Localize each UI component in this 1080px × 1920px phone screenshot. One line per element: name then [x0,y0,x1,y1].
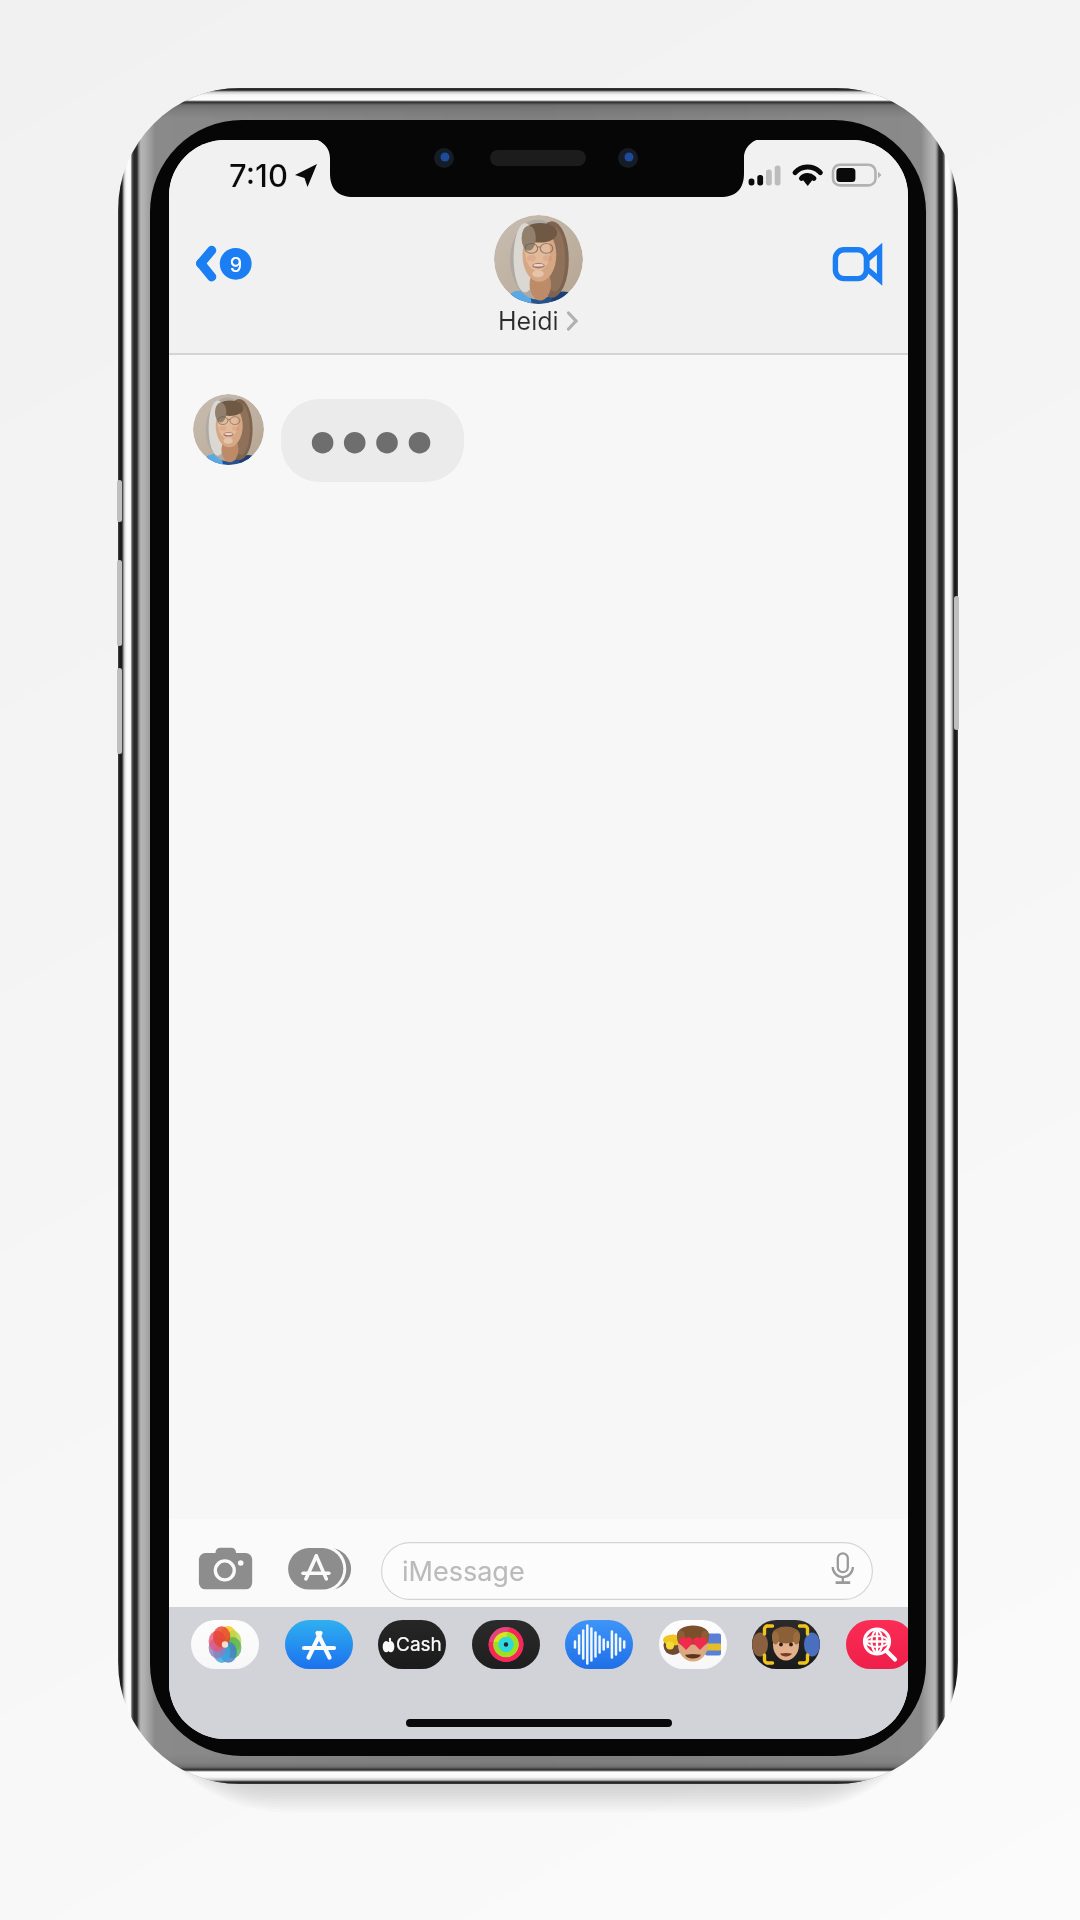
staticText: iMessage [402,1555,525,1588]
button[interactable]: appstore [285,1620,353,1669]
button[interactable]: voice [565,1620,633,1669]
button[interactable]: iMessage [381,1542,873,1600]
button[interactable]: Camera [195,1545,257,1593]
staticText: 9 [220,253,252,277]
button[interactable]: Back, 9 unread messages [183,234,259,294]
button[interactable]: gif [846,1620,908,1669]
staticText: 7:10 [229,157,288,195]
button[interactable]: photos [191,1620,259,1669]
staticText: Heidi [498,306,559,336]
button[interactable]: memoji2 [752,1620,820,1669]
button[interactable]: cash [378,1620,446,1669]
button[interactable]: memoji1 [659,1620,727,1669]
staticText: Cash [396,1633,442,1656]
button[interactable]: fitness [472,1620,540,1669]
button[interactable]: FaceTime video call [817,232,895,294]
button[interactable]: Heidi [494,215,583,336]
button[interactable]: iMessage apps [285,1543,355,1595]
